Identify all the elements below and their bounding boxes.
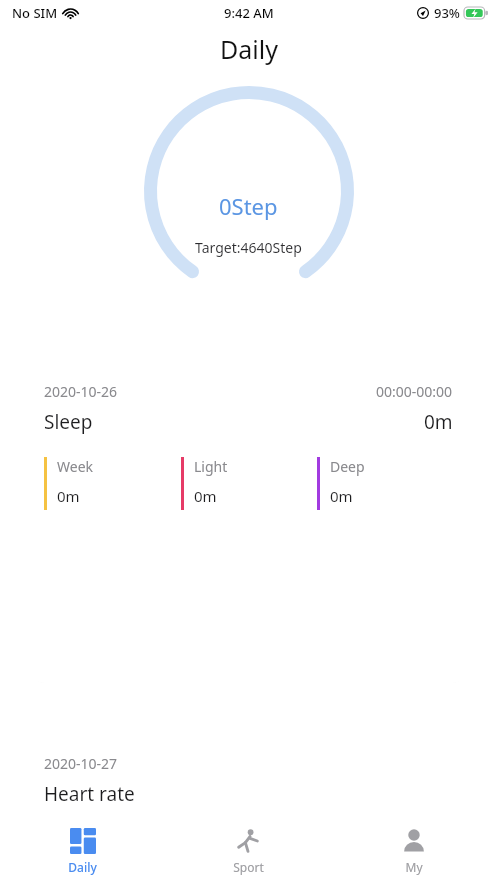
staticText: 0m [424,409,453,435]
staticText: Heart rate [44,781,135,807]
button[interactable]: 2020-10-27 [31,740,466,883]
staticText: Daily [220,32,278,66]
staticText: No SIM [12,4,58,22]
staticText: 2020-10-27 [44,754,118,773]
staticText: Sport [233,859,264,875]
button[interactable]: My [331,820,497,883]
staticText: 0m [330,486,353,506]
staticText: Week [57,457,94,476]
staticText: My [405,859,423,875]
staticText: Deep [330,457,365,476]
staticText: Target:4640Step [195,238,302,257]
staticText: Sleep [44,409,93,435]
staticText: 00:00-00:00 [376,382,453,401]
staticText: 0m [194,486,217,506]
staticText: Daily [68,859,97,875]
button[interactable]: Daily [0,820,165,883]
staticText: 9:42 AM [224,4,274,22]
staticText: 2020-10-26 [44,382,118,401]
staticText: 0Step [219,191,278,221]
staticText: 93% [434,4,460,22]
staticText: 0m [57,486,80,506]
staticText: Light [194,457,228,476]
button[interactable]: 2020-10-26 [31,368,466,683]
button[interactable]: Sport [165,820,331,883]
